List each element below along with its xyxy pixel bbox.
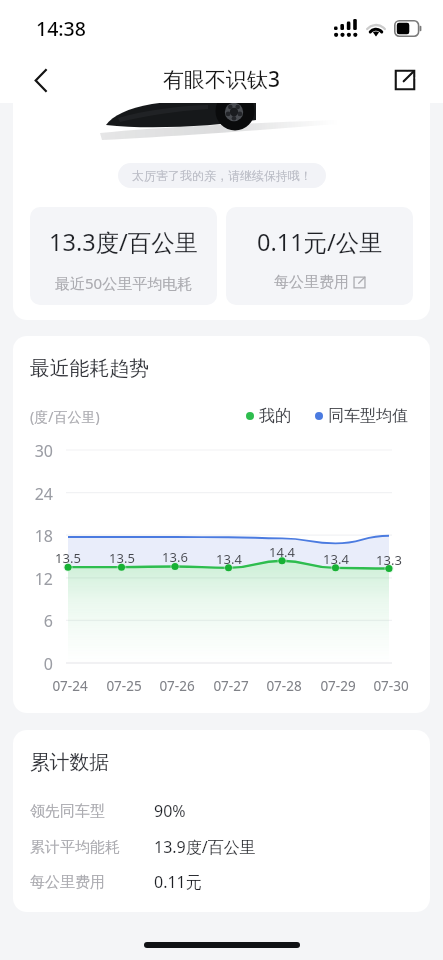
staticText: 累计数据 bbox=[30, 750, 110, 775]
staticText: 07-26 bbox=[152, 677, 202, 695]
staticText: 07-28 bbox=[259, 677, 309, 695]
staticText: 90% bbox=[154, 800, 186, 822]
staticText: 13.6 bbox=[156, 548, 194, 566]
staticText: 我的 bbox=[259, 406, 291, 426]
staticText: 13.5 bbox=[49, 549, 87, 567]
staticText: 13.5 bbox=[103, 549, 141, 567]
staticText: 07-30 bbox=[366, 677, 416, 695]
staticText: 07-24 bbox=[45, 677, 95, 695]
staticText: 13.3度/百公里 bbox=[49, 226, 199, 258]
staticText: 14:38 bbox=[36, 15, 86, 42]
staticText: 领先同车型 bbox=[30, 802, 154, 821]
staticText: 07-25 bbox=[99, 677, 149, 695]
staticText: 6 bbox=[19, 610, 53, 632]
staticText: 同车型均值 bbox=[328, 406, 408, 426]
staticText: 13.4 bbox=[210, 550, 248, 568]
staticText: 最近能耗趋势 bbox=[30, 356, 149, 381]
staticText: 最近50公里平均电耗 bbox=[55, 273, 193, 293]
staticText: 13.4 bbox=[317, 550, 355, 568]
staticText: 30 bbox=[19, 440, 53, 462]
button[interactable]: Back bbox=[22, 61, 60, 99]
button[interactable]: 0.11元/公里 bbox=[226, 207, 413, 305]
staticText: 累计平均能耗 bbox=[30, 838, 154, 857]
staticText: 14.4 bbox=[263, 543, 301, 561]
staticText: 13.3 bbox=[370, 551, 408, 569]
staticText: 07-27 bbox=[206, 677, 256, 695]
staticText: 13.9度/百公里 bbox=[154, 836, 256, 858]
staticText: 太厉害了我的亲，请继续保持哦！ bbox=[132, 168, 312, 183]
staticText: 每公里费用 bbox=[274, 273, 349, 292]
staticText: (度/百公里) bbox=[30, 407, 100, 426]
staticText: 07-29 bbox=[313, 677, 363, 695]
staticText: 18 bbox=[19, 525, 53, 547]
button[interactable]: 13.3度/百公里 bbox=[30, 207, 217, 305]
button[interactable]: Share bbox=[387, 62, 423, 98]
staticText: 12 bbox=[19, 568, 53, 590]
staticText: 有眼不识钛3 bbox=[163, 65, 281, 94]
staticText: 0.11元/公里 bbox=[257, 226, 383, 258]
staticText: 0 bbox=[19, 653, 53, 675]
staticText: 24 bbox=[19, 483, 53, 505]
staticText: 0.11元 bbox=[154, 871, 202, 893]
staticText: 每公里费用 bbox=[30, 873, 154, 892]
